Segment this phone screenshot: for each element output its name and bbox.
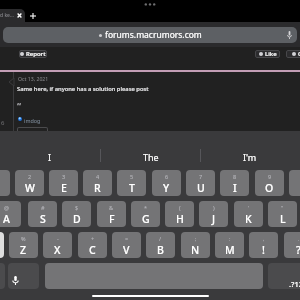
staticText: F [109, 212, 115, 226]
button[interactable]: 8 [220, 170, 249, 196]
staticText: Q [298, 50, 300, 58]
button[interactable]: @ [0, 201, 21, 227]
staticText: $ [75, 204, 79, 211]
button[interactable]: + [78, 232, 107, 258]
staticText: O [265, 181, 274, 195]
staticText: : [229, 235, 231, 242]
staticText: 8 [233, 173, 237, 180]
staticText: ' [248, 204, 250, 211]
button[interactable]: 0 [289, 170, 300, 196]
staticText: V [123, 243, 130, 257]
staticText: E [61, 181, 67, 195]
staticText: @ [4, 204, 9, 211]
staticText: S [40, 212, 46, 226]
staticText: Z [20, 243, 27, 257]
staticText: I [48, 151, 52, 163]
staticText: H [176, 212, 184, 226]
staticText: R [94, 181, 101, 195]
staticText: I'm [243, 151, 257, 163]
staticText: M [225, 243, 235, 257]
button[interactable]: forums.macrumors.com [3, 27, 297, 43]
button[interactable]: 4 [83, 170, 112, 196]
staticText: ( [179, 204, 181, 211]
staticText: 6 [1, 119, 5, 127]
staticText: # [41, 204, 45, 211]
staticText: 9 [268, 173, 272, 180]
button[interactable]: 9 [255, 170, 284, 196]
staticText: 2 [28, 173, 32, 180]
staticText: L [280, 212, 286, 226]
button[interactable]: Shift [0, 232, 4, 258]
staticText: " [281, 204, 284, 211]
button[interactable]: , [249, 232, 278, 258]
staticText: X [54, 243, 61, 257]
button[interactable]: % [9, 232, 38, 258]
staticText: A [3, 212, 10, 226]
button[interactable]: 2 [15, 170, 44, 196]
button[interactable]: Close tab [17, 13, 22, 18]
button[interactable]: 6 [152, 170, 181, 196]
staticText: G [142, 212, 150, 226]
button[interactable]: 7 [186, 170, 215, 196]
staticText: B [157, 243, 164, 257]
button[interactable]: ) [199, 201, 228, 227]
button[interactable]: ; [181, 232, 210, 258]
button[interactable]: # [28, 201, 57, 227]
button[interactable]: Like [255, 50, 280, 58]
button[interactable]: 3 [49, 170, 78, 196]
staticText: % [21, 235, 26, 242]
button[interactable]: . [284, 232, 300, 258]
staticText: J [212, 212, 216, 226]
staticText: 6 [165, 173, 169, 180]
staticText: Oct 13, 2021 [18, 75, 49, 82]
staticText: 7 [199, 173, 203, 180]
button[interactable]: : [215, 232, 244, 258]
button[interactable]: * [131, 201, 160, 227]
staticText: Report [26, 50, 46, 58]
button[interactable]: = [112, 232, 141, 258]
staticText: , [263, 235, 265, 242]
staticText: imdog [24, 117, 41, 124]
staticText: ? [296, 243, 300, 257]
staticText: Y [163, 181, 170, 195]
button[interactable]: $ [62, 201, 91, 227]
staticText: The [143, 151, 159, 163]
button[interactable]: & [97, 201, 126, 227]
staticText: “ [17, 99, 22, 111]
button[interactable]: Q [286, 50, 300, 58]
button[interactable]: Dictation [8, 263, 39, 289]
staticText: .?123 [289, 279, 300, 289]
button[interactable]: " [268, 201, 297, 227]
staticText: d ke... [0, 12, 14, 19]
button[interactable]: Report [19, 50, 47, 58]
button[interactable]: d ke... [0, 9, 25, 22]
staticText: 4 [96, 173, 100, 180]
staticText: / [159, 235, 162, 242]
staticText: D [73, 212, 81, 226]
staticText: . [298, 235, 300, 242]
staticText: forums.macrumors.com [105, 29, 202, 41]
staticText: K [245, 212, 252, 226]
button[interactable]: 1 [0, 170, 10, 196]
staticText: C [89, 243, 96, 257]
staticText: - [57, 235, 59, 242]
button[interactable]: .?123 [268, 263, 300, 289]
button[interactable]: ( [165, 201, 194, 227]
staticText: * [144, 204, 148, 211]
button[interactable]: 5 [117, 170, 146, 196]
staticText: ) [213, 204, 215, 211]
button[interactable]: - [43, 232, 72, 258]
staticText: W [25, 181, 35, 195]
button[interactable]: / [146, 232, 175, 258]
staticText: I [233, 181, 237, 195]
staticText: & [109, 204, 114, 211]
staticText: Like [265, 50, 277, 58]
staticText: N [191, 243, 200, 257]
button[interactable]: ' [234, 201, 263, 227]
staticText: U [197, 181, 205, 195]
staticText: T [129, 181, 135, 195]
staticText: = [125, 235, 129, 242]
button[interactable]: New tab [29, 12, 37, 20]
